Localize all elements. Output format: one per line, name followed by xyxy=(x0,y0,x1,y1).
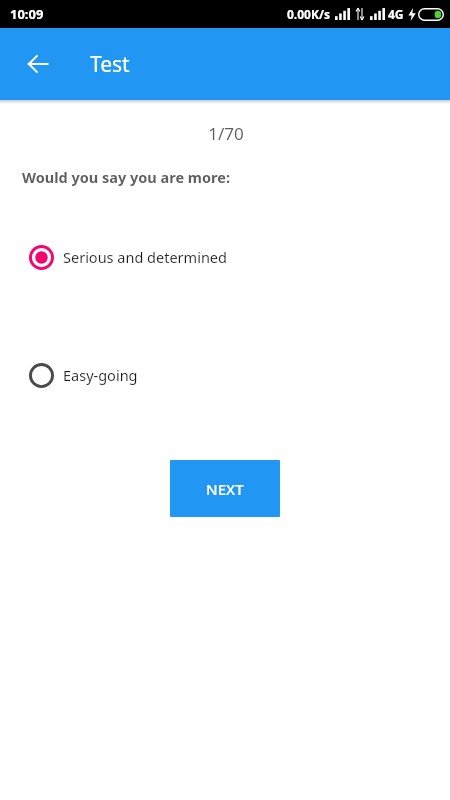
staticText: 0.00K/s xyxy=(287,6,330,22)
staticText: Would you say you are more: xyxy=(22,167,230,187)
staticText: Serious and determined xyxy=(63,247,227,267)
staticText: 4G xyxy=(388,6,404,22)
staticText: 1/70 xyxy=(1,122,450,145)
button[interactable]: Back xyxy=(14,40,62,88)
staticText: Easy-going xyxy=(63,365,138,385)
staticText: Test xyxy=(90,50,130,79)
button[interactable]: NEXT xyxy=(170,460,280,517)
staticText: NEXT xyxy=(206,479,244,499)
button[interactable]: Serious and determined xyxy=(0,240,450,274)
staticText: 10:09 xyxy=(10,5,44,23)
button[interactable]: Easy-going xyxy=(0,358,450,392)
